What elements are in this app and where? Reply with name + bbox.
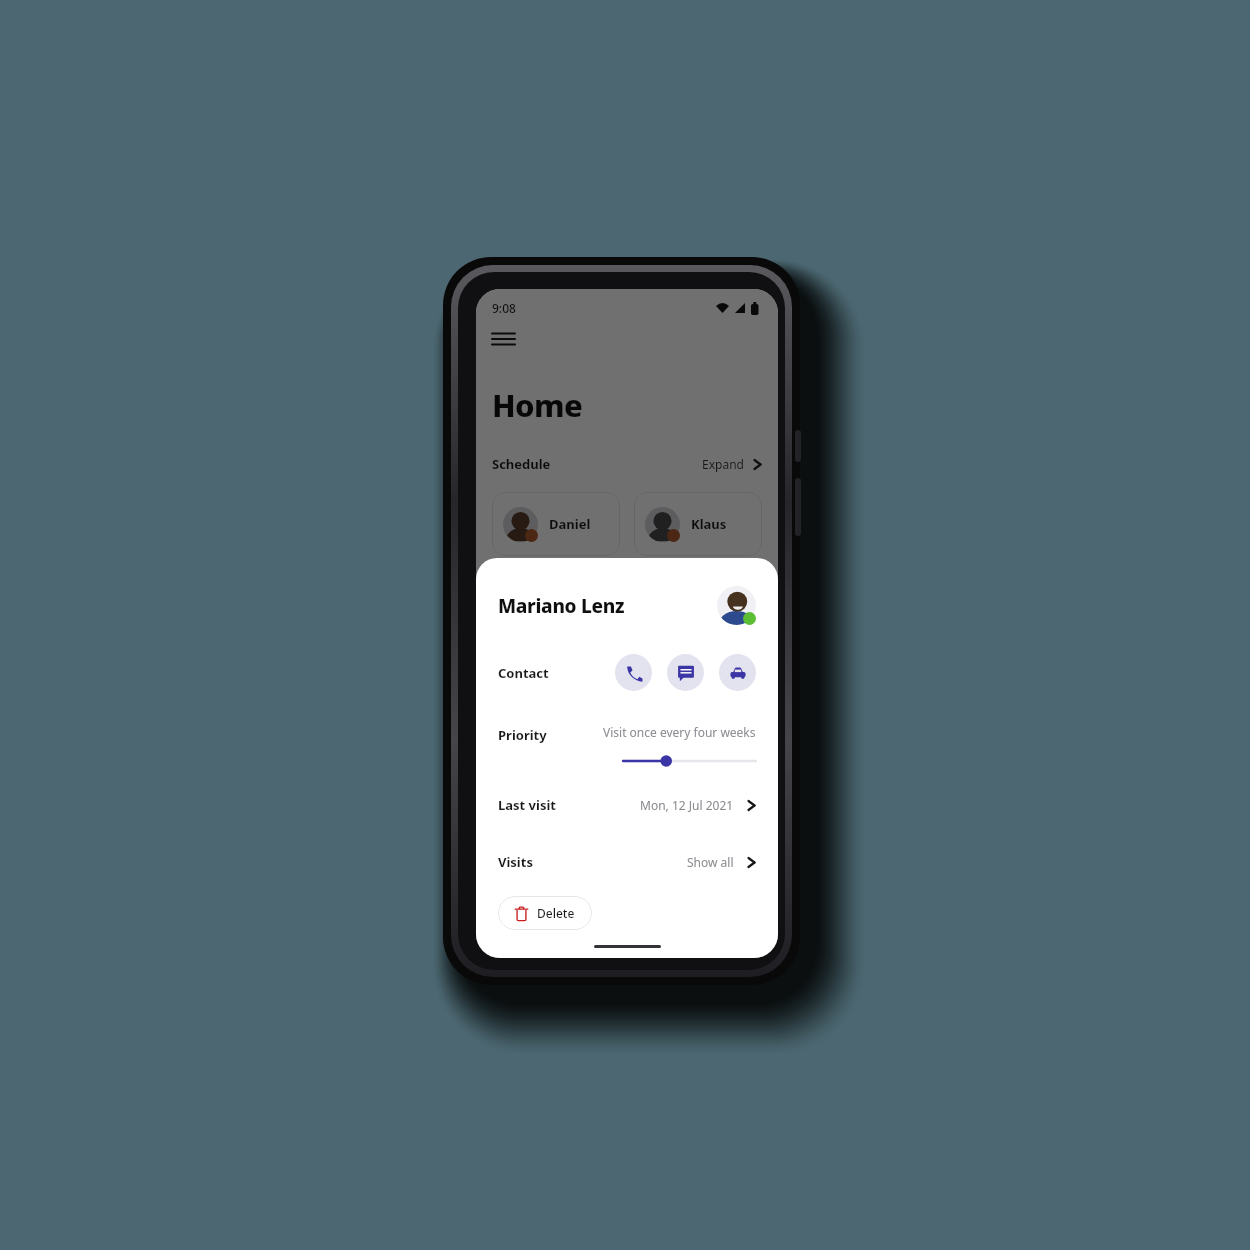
staticText: Mon, 12 Jul 2021	[640, 797, 734, 813]
staticText: Home	[492, 384, 583, 426]
staticText: Last visit	[498, 796, 556, 814]
button[interactable]: Daniel Garcia	[492, 492, 620, 556]
button[interactable]: Send message	[667, 654, 704, 691]
button[interactable]: Delete	[498, 896, 592, 930]
staticText: Priority	[498, 726, 547, 744]
staticText: Contact	[498, 664, 549, 682]
button[interactable]: Klaus	[634, 492, 762, 556]
button[interactable]: Visits	[498, 853, 756, 871]
staticText: Mariano Lenz	[498, 593, 625, 619]
button[interactable]: Schedule	[492, 455, 762, 473]
button[interactable]: Visit frequency	[623, 753, 756, 769]
button[interactable]: Directions	[719, 654, 756, 691]
staticText: Visits	[498, 853, 533, 871]
staticText: Daniel Garcia	[549, 515, 609, 533]
button[interactable]: Last visit	[498, 796, 756, 814]
button[interactable]: Call	[615, 654, 652, 691]
staticText: Visit once every four weeks	[603, 724, 756, 740]
staticText: 9:08	[492, 300, 516, 316]
staticText: Schedule	[492, 455, 551, 473]
staticText: Delete	[537, 905, 575, 921]
button[interactable]: Open navigation menu	[492, 331, 515, 347]
staticText: Klaus	[691, 515, 727, 533]
staticText: Show all	[687, 854, 734, 870]
staticText: Expand	[702, 456, 744, 472]
